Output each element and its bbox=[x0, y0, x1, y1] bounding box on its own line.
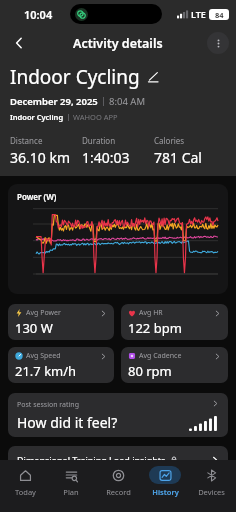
button[interactable]: Avg Power bbox=[8, 304, 114, 340]
staticText: Avg HR bbox=[139, 308, 214, 318]
staticText: Post session rating bbox=[17, 400, 80, 410]
staticText: Indoor Cycling bbox=[10, 64, 140, 90]
staticText: Avg Cadence bbox=[139, 351, 214, 361]
button[interactable]: Edit activity name bbox=[145, 69, 161, 85]
staticText: Record bbox=[106, 487, 131, 497]
staticText: Today bbox=[15, 487, 36, 497]
staticText: 225.8 bbox=[17, 467, 61, 490]
button[interactable]: Avg Speed bbox=[8, 347, 114, 383]
staticText: Avg Speed bbox=[26, 351, 100, 361]
button[interactable]: Dimensional Training Load insights bbox=[8, 446, 228, 490]
staticText: Plan bbox=[63, 487, 79, 497]
button[interactable]: History bbox=[143, 466, 187, 497]
staticText: 21.7 km/h bbox=[15, 362, 77, 379]
staticText: WAHOO APP bbox=[73, 112, 118, 122]
staticText: 80 rpm bbox=[128, 362, 172, 379]
staticText: 122 bpm bbox=[128, 319, 182, 336]
staticText: 10:04 bbox=[24, 7, 53, 22]
button[interactable]: Record bbox=[96, 466, 140, 497]
staticText: 8:04 AM bbox=[109, 95, 146, 108]
button[interactable]: Today bbox=[3, 466, 47, 497]
staticText: Power (W) bbox=[17, 191, 57, 202]
button[interactable]: Plan bbox=[49, 466, 93, 497]
button[interactable]: Avg Cadence bbox=[121, 347, 228, 383]
staticText: Calories bbox=[154, 135, 185, 146]
button[interactable]: Post session rating bbox=[8, 393, 228, 437]
staticText: Indoor Cycling bbox=[10, 112, 64, 122]
staticText: LTE bbox=[191, 8, 206, 20]
staticText: 36.10 km bbox=[10, 148, 70, 167]
button[interactable]: Devices bbox=[189, 466, 233, 497]
button[interactable]: More options bbox=[207, 32, 229, 54]
staticText: 781 Cal bbox=[154, 148, 202, 167]
button[interactable]: Back bbox=[6, 30, 32, 56]
button[interactable]: Power (W) bbox=[8, 184, 228, 294]
staticText: Dimensional Training Load insights bbox=[17, 454, 166, 466]
staticText: Avg Power bbox=[26, 308, 100, 318]
staticText: 130 W bbox=[15, 319, 53, 336]
staticText: December 29, 2025 bbox=[10, 95, 98, 108]
staticText: Duration bbox=[82, 135, 116, 146]
button[interactable]: Avg HR bbox=[121, 304, 228, 340]
staticText: Distance bbox=[10, 135, 43, 146]
staticText: Devices bbox=[198, 487, 225, 497]
staticText: How did it feel? bbox=[17, 413, 118, 432]
staticText: 84 bbox=[215, 10, 224, 20]
staticText: History bbox=[152, 487, 179, 497]
staticText: Activity details bbox=[73, 35, 163, 52]
staticText: 1:40:03 bbox=[82, 148, 130, 167]
